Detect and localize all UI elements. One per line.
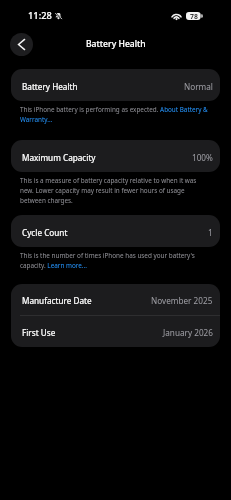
staticText: Battery Health [22, 81, 78, 92]
staticText: January 2026 [163, 327, 213, 338]
button[interactable]: Battery Health [11, 69, 220, 101]
staticText: 78 [190, 12, 198, 20]
staticText: This is a measure of battery capacity re… [20, 176, 211, 205]
staticText: Cycle Count [22, 227, 68, 238]
staticText: 11:28 [28, 9, 52, 22]
staticText: Manufacture Date [22, 295, 92, 306]
staticText: First Use [22, 327, 56, 338]
staticText: 100% [192, 152, 213, 163]
button[interactable]: Maximum Capacity [11, 140, 220, 172]
button[interactable]: This iPhone battery is performing as exp… [0, 101, 231, 124]
button[interactable]: Back [10, 33, 33, 56]
button[interactable]: Cycle Count [11, 215, 220, 247]
staticText: This iPhone battery is performing as exp… [20, 105, 211, 124]
staticText: Battery Health [86, 38, 146, 50]
staticText: 1 [208, 227, 213, 238]
button[interactable]: Manufacture Date [11, 284, 220, 315]
staticText: Maximum Capacity [22, 152, 96, 163]
button[interactable]: This is the number of times iPhone has u… [0, 247, 231, 270]
button[interactable]: First Use [11, 316, 220, 347]
staticText: Normal [184, 81, 213, 92]
staticText: November 2025 [151, 295, 213, 306]
staticText: This is the number of times iPhone has u… [20, 251, 211, 270]
